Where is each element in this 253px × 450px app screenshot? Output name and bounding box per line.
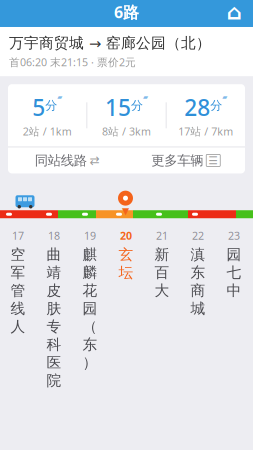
staticText: ▰ [222,93,227,101]
staticText: 管 [10,282,25,300]
staticText: ▼ [122,206,129,216]
staticText: 中 [226,282,241,300]
staticText: 麒 [82,246,97,264]
staticText: ☰ [208,154,218,166]
staticText: 七 [226,264,241,282]
staticText: ） [82,354,97,372]
staticText: 医 [46,354,61,372]
staticText: 大 [154,282,169,300]
staticText: 园 [82,300,97,318]
staticText: ▰ [57,93,62,101]
staticText: 人 [10,318,25,336]
staticText: 东 [190,264,205,282]
staticText: 首06:20 末21:15 · 票价2元 [9,55,136,69]
staticText: 21 [156,228,168,243]
staticText: 皮 [46,282,61,300]
button[interactable]: 同站线路 [8,147,126,173]
button[interactable]: 更多车辆 [126,147,245,173]
staticText: 专 [46,318,61,336]
staticText: ▰ [143,93,148,101]
button[interactable]: 18 [36,228,72,393]
staticText: 17站 / 7km [178,124,233,138]
staticText: 新 [154,246,169,264]
staticText: 花 [82,282,97,300]
staticText: 22 [192,228,204,243]
button[interactable]: 21 [144,228,180,393]
button[interactable]: 23 [216,228,252,393]
staticText: 28 [184,92,210,122]
staticText: ⇄ [90,154,100,167]
staticText: （ [82,318,97,336]
button[interactable]: Home [221,0,247,25]
staticText: 坛 [118,264,133,282]
staticText: 线 [10,300,25,318]
staticText: ⌂ [226,0,241,24]
staticText: 商 [190,282,205,300]
staticText: 同站线路 [35,152,87,169]
button[interactable]: 19 [72,228,108,393]
staticText: 15 [105,92,131,122]
staticText: 万宇商贸城 → 窑廊公园（北） [9,34,211,52]
staticText: 5 [32,92,45,122]
staticText: 麟 [82,264,97,282]
staticText: 园 [226,246,241,264]
staticText: 科 [46,336,61,354]
staticText: 18 [48,228,60,243]
staticText: 6路 [114,1,139,23]
staticText: 17 [12,228,24,243]
button[interactable]: 22 [180,228,216,393]
staticText: 曲 [46,246,61,264]
staticText: 分 [131,98,143,113]
button[interactable]: 17 [0,228,36,393]
staticText: 分 [210,98,222,113]
staticText: 肤 [46,300,61,318]
staticText: 19 [84,228,96,243]
staticText: 百 [154,264,169,282]
staticText: 更多车辆 [151,152,203,169]
staticText: 东 [82,336,97,354]
staticText: 2站 / 1km [23,124,72,138]
staticText: 院 [46,372,61,390]
staticText: 23 [228,228,240,243]
staticText: 分 [45,98,57,113]
staticText: 20 [120,228,132,243]
staticText: 城 [190,300,205,318]
staticText: 滇 [190,246,205,264]
staticText: 玄 [118,246,133,264]
staticText: 空 [10,246,25,264]
staticText: 靖 [46,264,61,282]
staticText: 军 [10,264,25,282]
staticText: 8站 / 3km [102,124,151,138]
button[interactable]: 20 [108,228,144,393]
